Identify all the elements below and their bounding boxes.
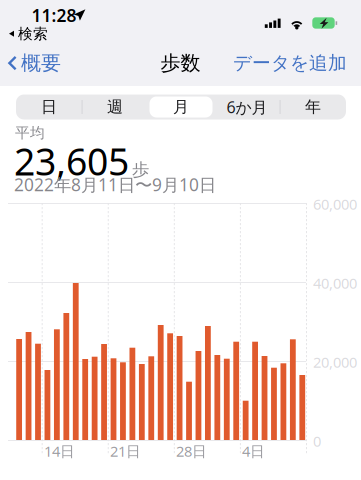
staticText: 14日 <box>44 441 75 461</box>
staticText: 23,605 <box>14 136 129 186</box>
staticText: 概要 <box>21 51 61 75</box>
staticText: データを追加 <box>233 51 347 74</box>
staticText: 28日 <box>176 441 207 461</box>
staticText: 6か月 <box>226 96 267 118</box>
staticText: 歩 <box>132 159 149 180</box>
staticText: 週 <box>107 97 123 117</box>
staticText: 2022年8月11日〜9月10日 <box>14 173 216 196</box>
staticText: 20,000 <box>313 352 357 372</box>
staticText: 日 <box>41 97 57 117</box>
staticText: 月 <box>173 97 189 117</box>
button[interactable]: 年 <box>280 94 346 119</box>
button[interactable]: データを追加 <box>227 47 347 79</box>
staticText: 年 <box>305 97 321 117</box>
staticText: 平均 <box>15 124 45 142</box>
staticText: 40,000 <box>313 273 357 293</box>
staticText: 検索 <box>18 25 48 43</box>
button[interactable]: 検索 <box>9 26 54 41</box>
button[interactable]: 週 <box>82 94 148 119</box>
button[interactable]: 月 <box>148 94 214 119</box>
staticText: 11:28 <box>31 4 76 27</box>
staticText: 60,000 <box>313 194 357 214</box>
staticText: 0 <box>313 431 321 451</box>
button[interactable]: 日 <box>16 94 82 119</box>
button[interactable]: 6か月 <box>214 94 280 119</box>
staticText: 歩数 <box>160 51 200 75</box>
staticText: 21日 <box>110 441 141 461</box>
staticText: 4日 <box>242 441 265 461</box>
button[interactable]: 概要 <box>8 47 67 79</box>
